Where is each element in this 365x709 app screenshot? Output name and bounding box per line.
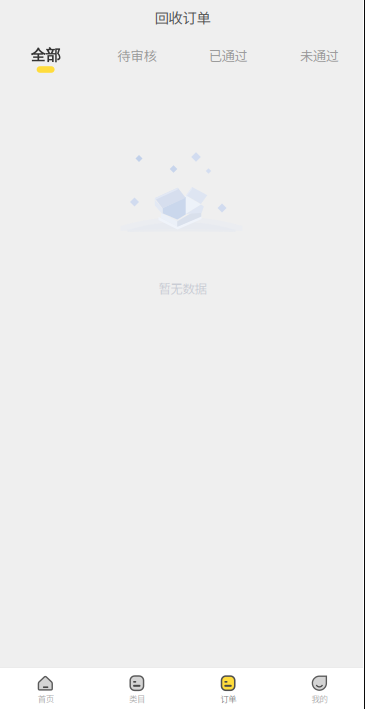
staticText: 待审核 [117,46,156,65]
button[interactable]: 未通过 [274,46,365,73]
staticText: 回收订单 [154,7,210,28]
staticText: 首页 [38,693,54,705]
staticText: 全部 [31,46,61,65]
staticText: 我的 [311,693,327,705]
staticText: 类目 [129,693,145,705]
staticText: 订单 [220,693,236,705]
button[interactable]: 订单 [182,675,274,705]
button[interactable]: 已通过 [182,46,274,73]
button[interactable]: 我的 [274,675,365,705]
button[interactable]: 待审核 [91,46,182,73]
button[interactable]: 首页 [0,675,91,705]
staticText: 已通过 [209,46,248,65]
staticText: 未通过 [300,46,339,65]
button[interactable]: 全部 [0,46,91,73]
button[interactable]: 类目 [91,675,182,705]
staticText: 暂无数据 [158,279,206,297]
